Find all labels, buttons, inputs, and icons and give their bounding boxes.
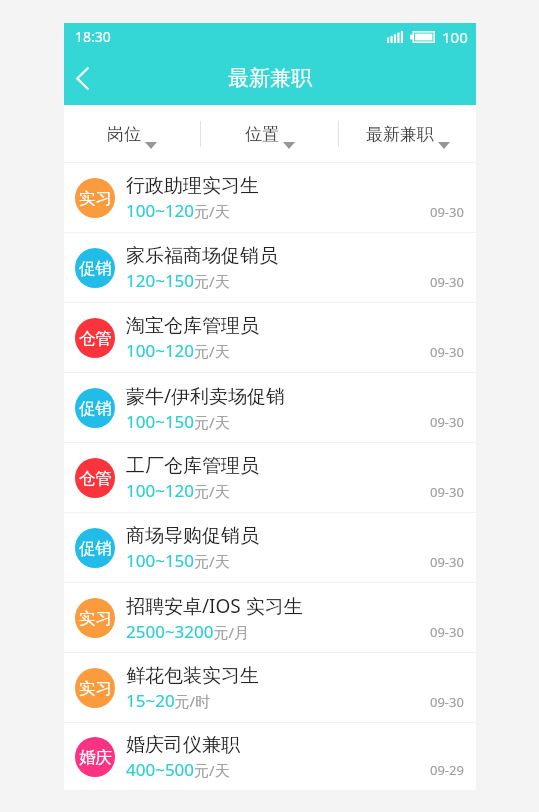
staticText: 2500~3200元/月 <box>126 620 250 643</box>
staticText: 09-30 <box>430 413 464 431</box>
staticText: 09-30 <box>430 623 464 641</box>
staticText: 09-29 <box>430 761 464 779</box>
staticText: 09-30 <box>430 553 464 571</box>
staticText: 仓管 <box>79 328 112 349</box>
staticText: 蒙牛/伊利卖场促销 <box>126 383 286 409</box>
staticText: 最新兼职 <box>366 124 434 145</box>
staticText: 鲜花包装实习生 <box>126 664 259 688</box>
staticText: 促销 <box>79 538 112 559</box>
button[interactable]: 位置 <box>201 105 338 162</box>
button[interactable]: 促销 <box>64 513 476 583</box>
staticText: 100~120元/天 <box>126 479 230 502</box>
staticText: 实习 <box>79 678 112 699</box>
staticText: 100 <box>442 27 468 47</box>
button[interactable]: 岗位 <box>64 105 200 162</box>
staticText: 09-30 <box>430 693 464 711</box>
staticText: 促销 <box>79 258 112 279</box>
button[interactable]: 实习 <box>64 653 476 723</box>
button[interactable]: 婚庆 <box>64 723 476 790</box>
staticText: 实习 <box>79 608 112 629</box>
staticText: 09-30 <box>430 483 464 501</box>
staticText: 120~150元/天 <box>126 269 230 292</box>
staticText: 岗位 <box>107 124 141 145</box>
button[interactable]: 仓管 <box>64 443 476 513</box>
staticText: 09-30 <box>430 343 464 361</box>
staticText: 行政助理实习生 <box>126 174 259 198</box>
staticText: 100~120元/天 <box>126 339 230 362</box>
staticText: 09-30 <box>430 203 464 221</box>
staticText: 工厂仓库管理员 <box>126 454 259 478</box>
staticText: 淘宝仓库管理员 <box>126 314 259 338</box>
button[interactable]: 最新兼职 <box>339 105 476 162</box>
staticText: 最新兼职 <box>228 65 312 91</box>
staticText: 18:30 <box>75 27 111 46</box>
button[interactable]: Back <box>64 55 110 101</box>
staticText: 15~20元/时 <box>126 689 211 712</box>
staticText: 家乐福商场促销员 <box>126 244 278 268</box>
staticText: 100~150元/天 <box>126 410 230 433</box>
button[interactable]: 实习 <box>64 163 476 233</box>
staticText: 婚庆司仪兼职 <box>126 733 240 757</box>
staticText: 位置 <box>245 124 279 145</box>
staticText: 09-30 <box>430 273 464 291</box>
staticText: 婚庆 <box>79 747 112 768</box>
button[interactable]: 仓管 <box>64 303 476 373</box>
staticText: 100~150元/天 <box>126 549 230 572</box>
button[interactable]: 促销 <box>64 233 476 303</box>
button[interactable]: 促销 <box>64 373 476 443</box>
staticText: 招聘安卓/IOS 实习生 <box>126 593 303 619</box>
staticText: 400~500元/天 <box>126 758 230 781</box>
staticText: 实习 <box>79 188 112 209</box>
staticText: 100~120元/天 <box>126 199 230 222</box>
staticText: 仓管 <box>79 468 112 489</box>
staticText: 促销 <box>79 398 112 419</box>
button[interactable]: 实习 <box>64 583 476 653</box>
staticText: 商场导购促销员 <box>126 524 259 548</box>
